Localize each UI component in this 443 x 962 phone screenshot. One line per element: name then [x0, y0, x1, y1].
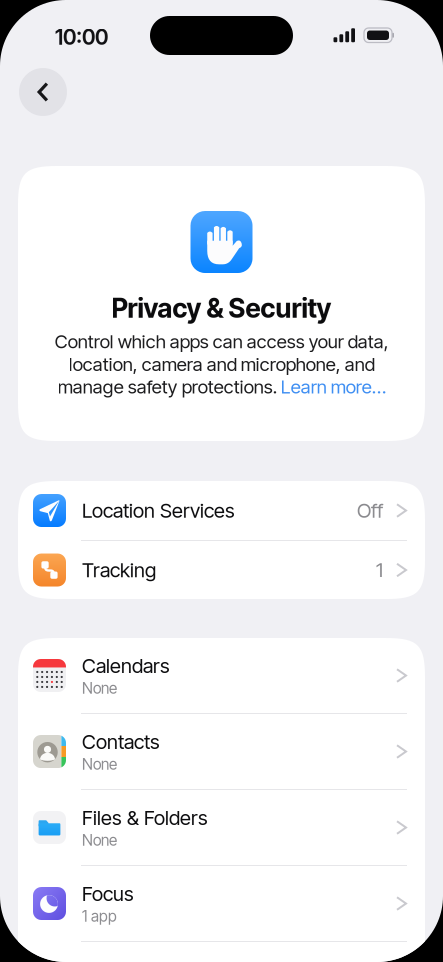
button[interactable]: Back	[19, 68, 67, 116]
staticText: Calendars	[82, 654, 170, 678]
staticText: Files & Folders	[82, 806, 208, 830]
button[interactable]: Health	[18, 942, 425, 962]
staticText: 1	[376, 558, 383, 582]
button[interactable]: Tracking	[18, 541, 425, 599]
staticText: Tracking	[82, 558, 156, 582]
staticText: None	[82, 831, 117, 849]
button[interactable]: Calendars	[18, 638, 425, 713]
staticText: Privacy & Security	[111, 292, 331, 324]
staticText: Location Services	[82, 498, 235, 523]
staticText: 10:00	[55, 24, 108, 50]
staticText: Contacts	[82, 730, 160, 754]
staticText: Control which apps can access your data,…	[54, 330, 388, 398]
staticText: None	[82, 679, 117, 697]
staticText: None	[82, 755, 117, 773]
button[interactable]: Files & Folders	[18, 790, 425, 865]
button[interactable]: Location Services	[18, 481, 425, 540]
staticText: Off	[357, 498, 383, 523]
button[interactable]: Contacts	[18, 714, 425, 789]
staticText: Focus	[82, 882, 134, 906]
button[interactable]: Focus	[18, 866, 425, 941]
staticText: 1 app	[82, 907, 117, 925]
